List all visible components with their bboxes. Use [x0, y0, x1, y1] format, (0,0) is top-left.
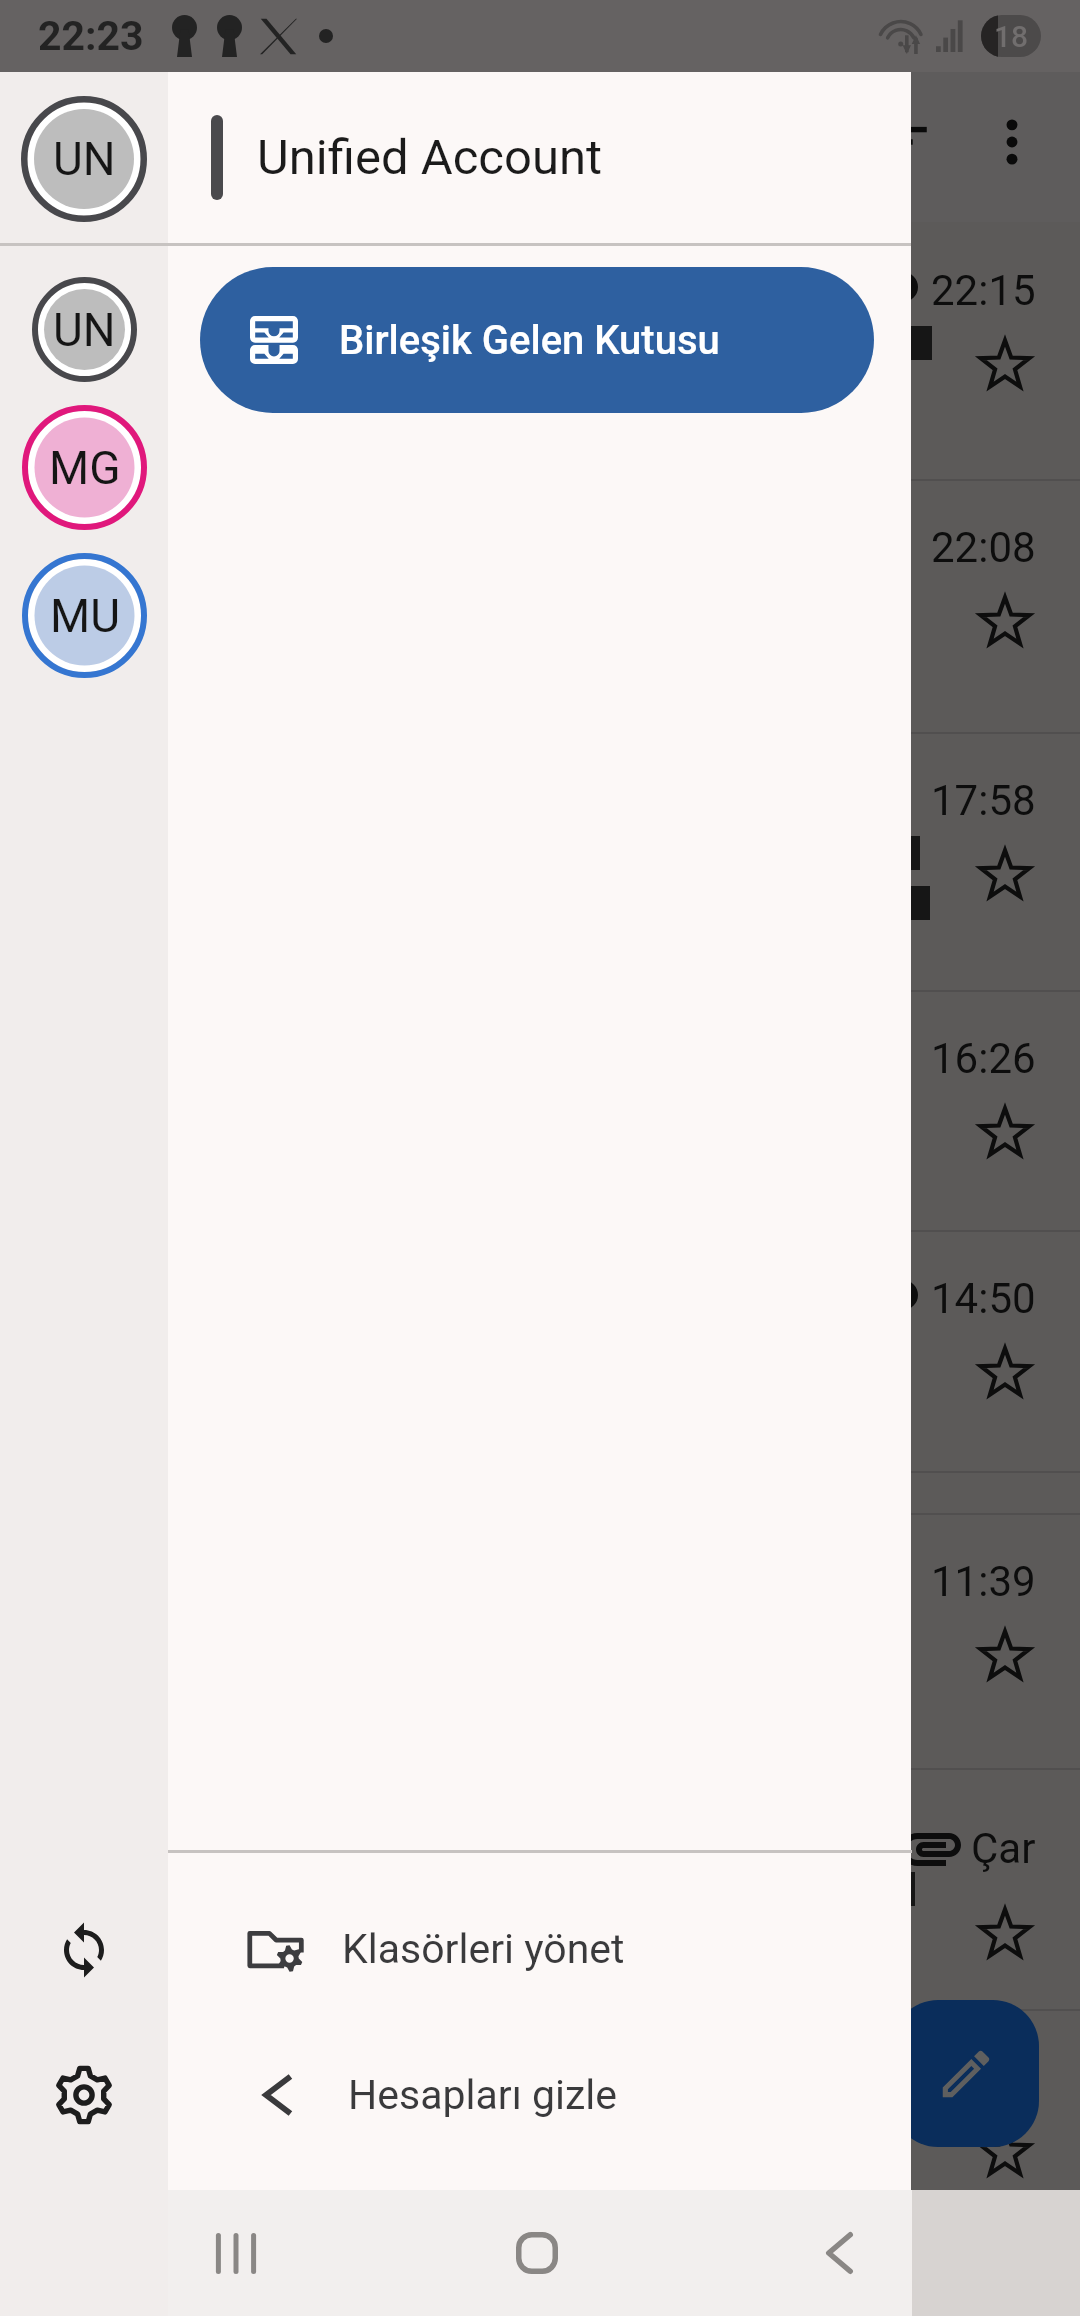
- button[interactable]: Settings: [26, 2037, 142, 2153]
- button[interactable]: 22:15: [0, 222, 1080, 479]
- button[interactable]: 16:26: [0, 990, 1080, 1230]
- staticText: Çar: [971, 2053, 1036, 2102]
- staticText: 17:58: [931, 776, 1036, 825]
- button[interactable]: Back: [688, 2190, 990, 2316]
- staticText: UN: [53, 303, 116, 357]
- button[interactable]: Unified inbox account: [32, 277, 137, 382]
- button[interactable]: Unified Account avatar: [21, 96, 147, 222]
- staticText: Hesapları gizle: [348, 2071, 618, 2119]
- staticText: 18: [994, 19, 1029, 54]
- staticText: 11:39: [931, 1557, 1036, 1606]
- staticText: 16:26: [931, 1034, 1036, 1083]
- staticText: Birleşik Gelen Kutusu: [339, 317, 720, 364]
- staticText: 14:50: [931, 1274, 1036, 1323]
- button[interactable]: Home: [386, 2190, 688, 2316]
- staticText: UN: [53, 132, 116, 186]
- button[interactable]: Sync: [26, 1892, 142, 2008]
- button[interactable]: Çar: [0, 1768, 1080, 2009]
- staticText: Klasörleri yönet: [342, 1925, 625, 1973]
- button[interactable]: 17:58: [0, 732, 1080, 990]
- button[interactable]: Unified Account: [168, 72, 912, 243]
- staticText: Unified Account: [257, 129, 602, 186]
- button[interactable]: Klasörleri yönet: [168, 1883, 912, 2015]
- button[interactable]: 11:39: [0, 1513, 1080, 1768]
- button[interactable]: Çar: [0, 2009, 1080, 2260]
- button[interactable]: 22:08: [0, 479, 1080, 732]
- staticText: 22:23: [38, 12, 144, 60]
- staticText: 22:15: [931, 266, 1036, 315]
- staticText: MG: [49, 441, 121, 495]
- button[interactable]: MU account: [22, 553, 147, 678]
- button[interactable]: 14:50: [0, 1230, 1080, 1471]
- staticText: Çar: [971, 1824, 1036, 1873]
- button[interactable]: MG account: [22, 405, 147, 530]
- button[interactable]: Recent apps: [85, 2190, 386, 2316]
- button[interactable]: Hesapları gizle: [168, 2029, 912, 2161]
- button[interactable]: Compose: [892, 2000, 1039, 2147]
- staticText: MU: [50, 589, 120, 643]
- button[interactable]: Birleşik Gelen Kutusu: [200, 267, 874, 413]
- staticText: 22:08: [931, 523, 1036, 572]
